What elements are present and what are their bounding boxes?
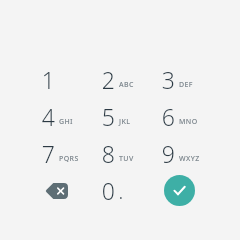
button[interactable]: 4 [30,98,90,135]
button[interactable]: 7 [30,135,90,172]
staticText: TUV [119,154,134,164]
staticText: 5 [101,101,115,132]
staticText: DEF [179,80,193,90]
button[interactable]: 1 [30,61,90,98]
button[interactable]: 0 [90,172,150,209]
button[interactable]: 3 [150,61,210,98]
staticText: MNO [179,117,198,127]
staticText: 7 [41,138,55,169]
staticText: JKL [119,117,131,127]
staticText: 4 [41,101,55,132]
staticText: GHI [59,117,74,127]
button[interactable]: Call [150,172,210,209]
staticText: 3 [161,64,175,95]
button[interactable]: 5 [90,98,150,135]
button[interactable]: 9 [150,135,210,172]
staticText: 8 [101,138,115,169]
staticText: 9 [161,138,175,169]
staticText: 1 [41,64,55,95]
staticText: WXYZ [179,154,200,164]
staticText: 0 [101,175,115,206]
button[interactable]: 2 [90,61,150,98]
button[interactable]: Backspace [30,172,90,209]
staticText: 6 [161,101,175,132]
staticText: ABC [119,80,134,90]
staticText: 2 [101,64,115,95]
staticText: PQRS [59,154,79,164]
staticText: . [119,184,123,203]
button[interactable]: 6 [150,98,210,135]
button[interactable]: 8 [90,135,150,172]
